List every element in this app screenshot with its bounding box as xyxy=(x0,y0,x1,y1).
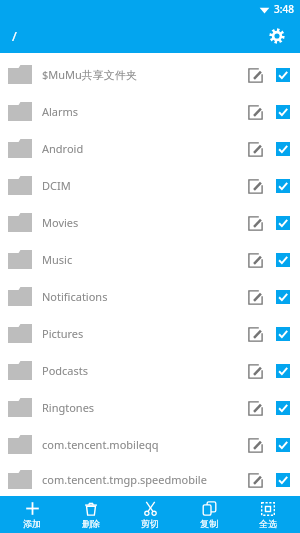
button[interactable]: $MuMu共享文件夹 xyxy=(0,56,300,93)
button[interactable]: Select xyxy=(270,284,296,310)
button[interactable]: Rename xyxy=(242,432,268,458)
button[interactable]: Copy xyxy=(182,500,236,529)
button[interactable]: Cut xyxy=(123,500,177,529)
button[interactable]: Rename xyxy=(242,321,268,347)
staticText: 删除 xyxy=(82,518,100,529)
button[interactable]: Select xyxy=(270,467,296,493)
staticText: DCIM xyxy=(42,178,242,193)
staticText: Music xyxy=(42,252,242,267)
button[interactable]: Pictures xyxy=(0,315,300,352)
button[interactable]: com.tencent.mobileqq xyxy=(0,426,300,463)
staticText: 添加 xyxy=(23,518,41,529)
staticText: 复制 xyxy=(200,518,218,529)
button[interactable]: Delete xyxy=(64,500,118,529)
button[interactable]: Rename xyxy=(242,210,268,236)
staticText: / xyxy=(12,27,17,45)
staticText: $MuMu共享文件夹 xyxy=(42,67,242,82)
button[interactable]: Select xyxy=(270,136,296,162)
button[interactable]: Add xyxy=(5,500,59,529)
button[interactable]: Select xyxy=(270,247,296,273)
button[interactable]: Rename xyxy=(242,99,268,125)
button[interactable]: Rename xyxy=(242,284,268,310)
button[interactable]: Select xyxy=(270,395,296,421)
button[interactable]: Select xyxy=(270,173,296,199)
button[interactable]: Alarms xyxy=(0,93,300,130)
staticText: Alarms xyxy=(42,104,242,119)
button[interactable]: Rename xyxy=(242,467,268,493)
button[interactable]: Notifications xyxy=(0,278,300,315)
button[interactable]: Rename xyxy=(242,395,268,421)
button[interactable]: Select xyxy=(270,62,296,88)
button[interactable]: Settings xyxy=(262,21,292,51)
button[interactable]: Rename xyxy=(242,136,268,162)
staticText: com.tencent.mobileqq xyxy=(42,437,242,452)
staticText: com.tencent.tmgp.speedmobile xyxy=(42,472,242,487)
button[interactable]: Select xyxy=(270,321,296,347)
staticText: 剪切 xyxy=(141,518,159,529)
button[interactable]: Music xyxy=(0,241,300,278)
staticText: Notifications xyxy=(42,289,242,304)
button[interactable]: Ringtones xyxy=(0,389,300,426)
button[interactable]: Podcasts xyxy=(0,352,300,389)
button[interactable]: Select xyxy=(270,358,296,384)
staticText: Movies xyxy=(42,215,242,230)
button[interactable]: Rename xyxy=(242,173,268,199)
staticText: Ringtones xyxy=(42,400,242,415)
staticText: Podcasts xyxy=(42,363,242,378)
staticText: 全选 xyxy=(259,518,277,529)
button[interactable]: Android xyxy=(0,130,300,167)
button[interactable]: Rename xyxy=(242,62,268,88)
button[interactable]: com.tencent.tmgp.speedmobile xyxy=(0,463,300,496)
button[interactable]: Rename xyxy=(242,247,268,273)
staticText: Android xyxy=(42,141,242,156)
button[interactable]: Select xyxy=(270,210,296,236)
staticText: 3:48 xyxy=(274,2,294,16)
button[interactable]: Select xyxy=(270,432,296,458)
button[interactable]: DCIM xyxy=(0,167,300,204)
button[interactable]: Select all xyxy=(241,500,295,529)
staticText: Pictures xyxy=(42,326,242,341)
button[interactable]: Rename xyxy=(242,358,268,384)
button[interactable]: Movies xyxy=(0,204,300,241)
button[interactable]: Select xyxy=(270,99,296,125)
